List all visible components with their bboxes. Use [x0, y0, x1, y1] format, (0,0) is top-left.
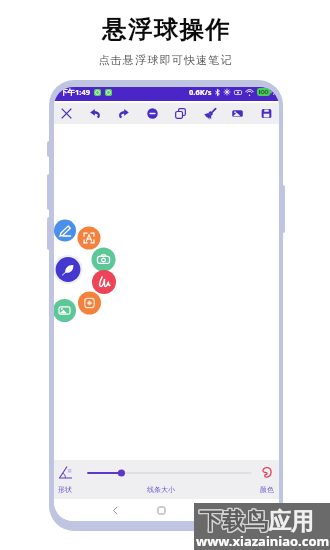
staticText: 点击悬浮球即可快速笔记: [98, 53, 233, 67]
staticText: 0.6K/s: [189, 87, 212, 97]
button[interactable]: Undo: [85, 103, 106, 124]
button[interactable]: Clear: [199, 103, 220, 124]
staticText: 下载鸟: [199, 508, 268, 537]
button[interactable]: Image: [227, 103, 248, 124]
button[interactable]: Shape: [56, 463, 75, 482]
staticText: 悬浮球操作: [101, 15, 230, 45]
staticText: 下午1:49: [60, 87, 90, 97]
button[interactable]: Color: [257, 463, 276, 482]
staticText: 下载鸟: [198, 508, 267, 537]
staticText: 下载鸟: [198, 507, 267, 536]
staticText: 形状: [58, 485, 72, 494]
button[interactable]: Copy: [170, 103, 191, 124]
staticText: www.xiazainiao.com: [196, 532, 330, 550]
button[interactable]: Home: [153, 502, 170, 519]
staticText: 下载鸟: [200, 507, 269, 536]
staticText: 下载鸟: [198, 506, 267, 535]
button[interactable]: Close: [56, 103, 77, 124]
button[interactable]: Recents: [199, 502, 216, 519]
staticText: 下载鸟: [199, 506, 268, 535]
staticText: 下载鸟: [200, 506, 269, 535]
button[interactable]: Remove: [142, 103, 163, 124]
button[interactable]: Redo: [113, 103, 134, 124]
staticText: 线条大小: [147, 485, 175, 494]
button[interactable]: Save: [256, 103, 277, 124]
staticText: 下载鸟: [199, 507, 268, 536]
staticText: 颜色: [260, 485, 274, 494]
staticText: 下载鸟: [200, 508, 269, 537]
button[interactable]: Back: [107, 502, 124, 519]
staticText: 应用: [268, 507, 314, 536]
